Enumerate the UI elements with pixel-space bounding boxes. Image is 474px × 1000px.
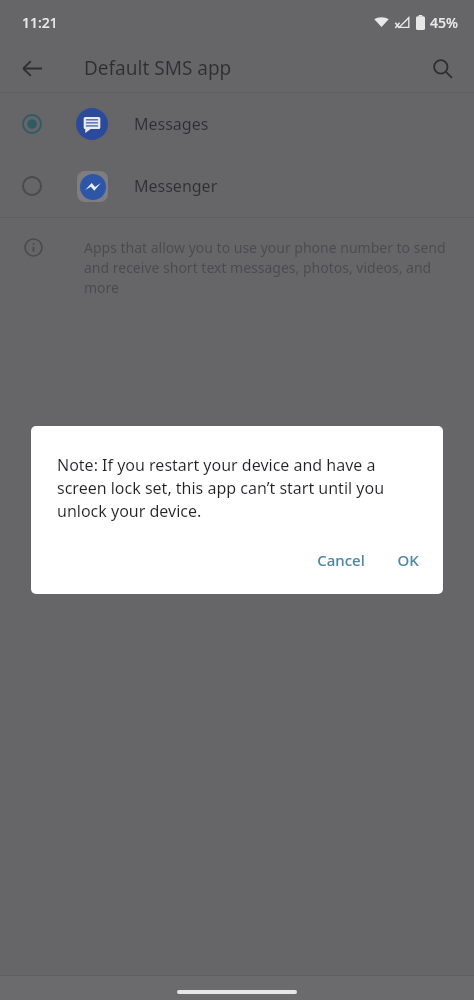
- staticText: Default SMS app: [84, 55, 232, 81]
- button[interactable]: Search: [420, 46, 464, 90]
- staticText: Apps that allow you to use your phone nu…: [84, 238, 446, 297]
- staticText: Messages: [134, 113, 209, 135]
- button[interactable]: Back: [10, 46, 54, 90]
- staticText: 45%: [430, 13, 458, 32]
- staticText: 11:21: [22, 13, 58, 32]
- button[interactable]: Messages: [0, 93, 474, 155]
- button[interactable]: Messenger: [0, 155, 474, 217]
- staticText: Note: If you restart your device and hav…: [57, 454, 419, 522]
- button[interactable]: OK: [385, 540, 431, 580]
- button[interactable]: Cancel: [305, 540, 377, 580]
- staticText: Cancel: [317, 550, 365, 570]
- staticText: Messenger: [134, 175, 218, 197]
- staticText: OK: [397, 550, 419, 570]
